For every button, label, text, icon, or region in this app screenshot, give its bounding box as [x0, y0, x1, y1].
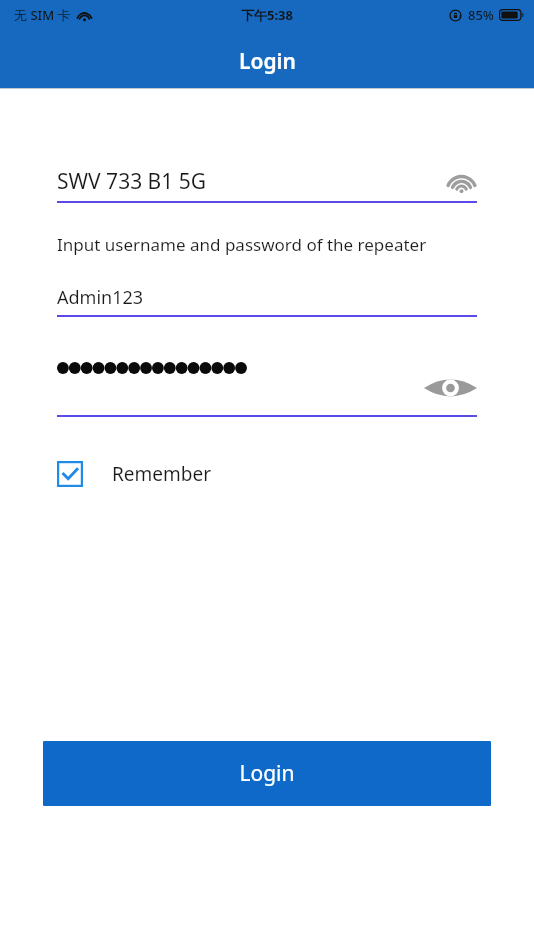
button[interactable]: Remember — [57, 454, 477, 494]
staticText: Login — [239, 47, 296, 76]
staticText: Remember — [112, 461, 212, 487]
staticText: Login — [239, 759, 295, 788]
staticText: 85% — [468, 6, 494, 24]
button[interactable]: Admin123 — [57, 279, 477, 315]
staticText: SWV 733 B1 5G — [57, 167, 207, 196]
other: Show password — [424, 374, 477, 402]
staticText: 下午5:38 — [241, 6, 293, 24]
staticText: Input username and password of the repea… — [57, 233, 427, 256]
staticText: Admin123 — [57, 285, 144, 310]
button[interactable]: SWV 733 B1 5G — [57, 161, 477, 201]
other: Wi-Fi — [446, 170, 477, 193]
button[interactable]: Login — [43, 741, 491, 806]
button[interactable]: Show password — [57, 343, 477, 415]
staticText: 无 SIM 卡 — [14, 6, 71, 24]
